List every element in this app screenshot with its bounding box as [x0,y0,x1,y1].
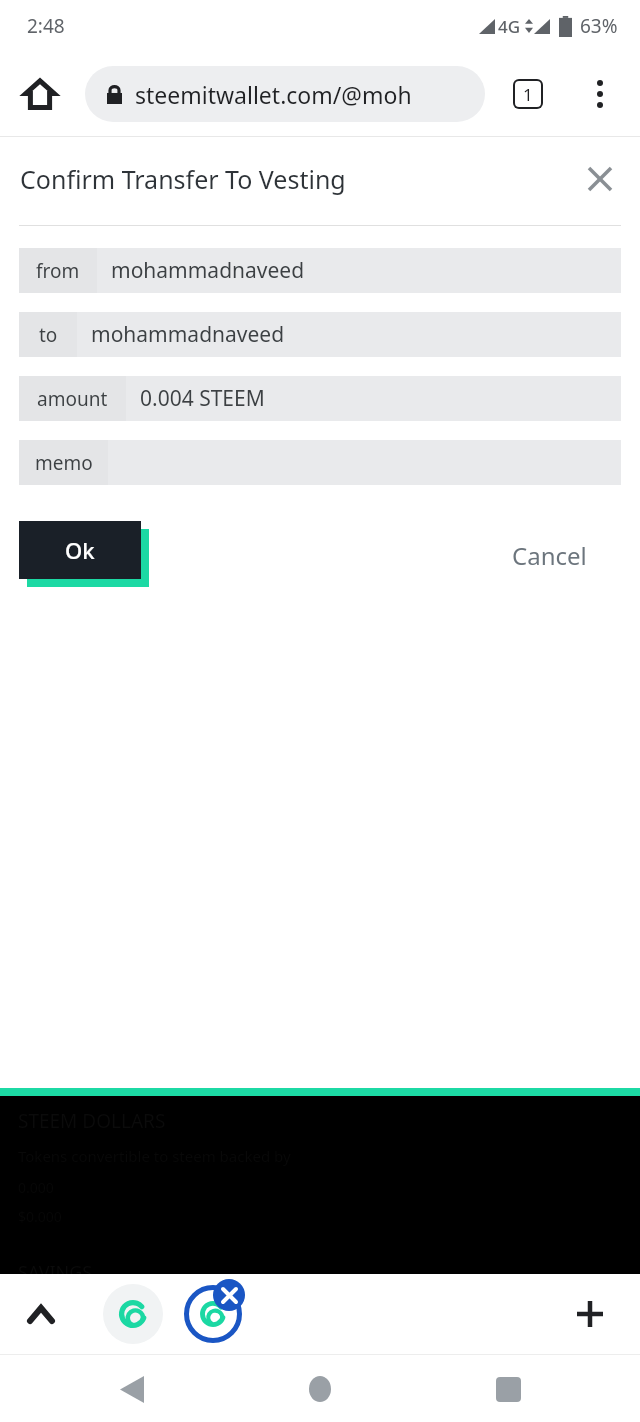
staticText: memo [35,450,93,476]
staticText: Confirm Transfer To Vesting [20,162,346,196]
staticText: mohammadnaveed [111,256,305,285]
button[interactable]: Ok [19,521,141,579]
staticText: 63% [580,13,618,39]
button[interactable]: Tabs [500,66,556,122]
staticText: 0.004 STEEM [140,384,265,413]
staticText: from [36,258,80,284]
button[interactable]: Recents [481,1362,535,1416]
button[interactable]: Cancel [504,531,595,580]
staticText: Ok [65,535,95,565]
button[interactable]: steemitwallet.com/@moh [85,66,485,122]
staticText: SAVINGS [18,1260,93,1274]
staticText: STEEM DOLLARS [18,1108,166,1134]
staticText: 1 [523,83,533,106]
staticText: to [39,322,58,348]
button[interactable]: Home [293,1362,347,1416]
button[interactable]: Current tab [180,1281,246,1347]
button[interactable]: More options [572,66,628,122]
button[interactable]: Back [105,1362,159,1416]
staticText: mohammadnaveed [91,320,285,349]
button[interactable]: Home [12,66,68,122]
button[interactable]: Close [578,157,622,201]
button[interactable]: New tab [564,1288,616,1340]
staticText: amount [37,386,108,412]
staticText: steemitwallet.com/@moh [135,79,412,110]
button[interactable]: Tab [103,1284,163,1344]
staticText: 4G [498,15,521,38]
button[interactable]: Expand tab switcher [16,1289,66,1339]
button[interactable]: Close tab [213,1279,245,1311]
staticText: 2:48 [27,13,65,39]
staticText: Cancel [512,539,587,572]
